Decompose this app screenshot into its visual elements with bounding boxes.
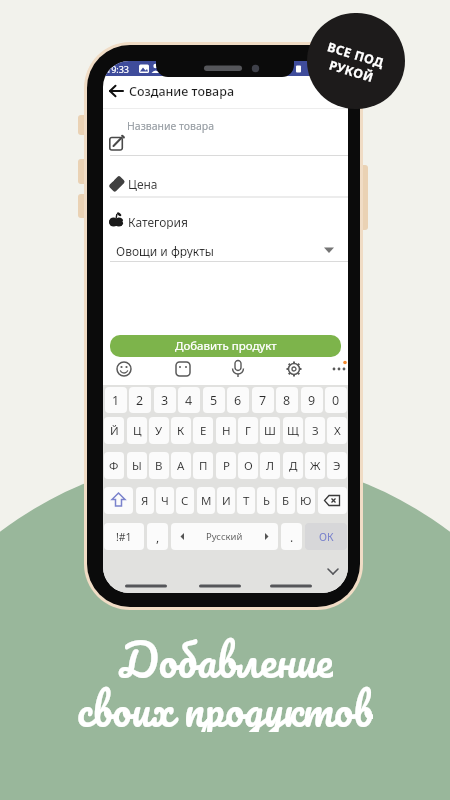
staticText: 3	[161, 392, 169, 409]
staticText: А	[177, 458, 185, 474]
staticText: ОК	[319, 530, 334, 544]
staticText: Русский	[206, 530, 243, 543]
button[interactable]: 7	[252, 387, 274, 413]
staticText: С	[181, 493, 189, 509]
button[interactable]: Э	[327, 452, 347, 479]
staticText: Ж	[310, 458, 321, 474]
button[interactable]: О	[238, 452, 258, 479]
button[interactable]: Ж	[305, 452, 325, 479]
button[interactable]: Я	[136, 487, 154, 514]
button[interactable]	[109, 85, 125, 97]
staticText: Л	[266, 458, 275, 474]
button[interactable]: 3	[154, 387, 176, 413]
staticText: 4	[185, 392, 193, 409]
staticText: Ю	[300, 493, 312, 509]
button[interactable]: 5	[203, 387, 225, 413]
staticText: Ч	[161, 493, 169, 509]
button[interactable]: Л	[260, 452, 280, 479]
staticText: Б	[282, 493, 290, 509]
button[interactable]: Р	[216, 452, 236, 479]
button[interactable]: Б	[277, 487, 295, 514]
button[interactable]: Т	[237, 487, 255, 514]
staticText: Т	[243, 493, 250, 509]
staticText: 7	[259, 392, 267, 409]
staticText: 1	[112, 392, 120, 409]
staticText: П	[199, 458, 208, 474]
button[interactable]: ,	[147, 523, 168, 550]
button[interactable]: М	[197, 487, 215, 514]
staticText: 19:33	[106, 63, 130, 75]
button[interactable]: Ь	[257, 487, 275, 514]
button[interactable]: П	[193, 452, 213, 479]
button[interactable]: Ц	[127, 417, 147, 444]
staticText: Создание товара	[129, 83, 235, 99]
button[interactable]: Д	[283, 452, 303, 479]
staticText: М	[201, 493, 212, 509]
staticText: Ш	[264, 423, 276, 439]
staticText: Х	[334, 423, 341, 439]
staticText: З	[312, 423, 319, 439]
staticText: 6	[234, 392, 242, 409]
button[interactable]: Й	[104, 417, 124, 444]
staticText: Е	[200, 423, 207, 439]
button[interactable]: Н	[216, 417, 236, 444]
button[interactable]: 1	[105, 387, 127, 413]
button[interactable]: В	[149, 452, 169, 479]
staticText: Добавить продукт	[175, 338, 277, 354]
staticText: Ь	[263, 493, 270, 509]
staticText: !#1	[116, 530, 132, 544]
staticText: 9	[308, 392, 316, 409]
staticText: Й	[110, 423, 119, 439]
staticText: .	[290, 529, 294, 545]
staticText: 2	[136, 392, 144, 409]
button[interactable]: !#1	[104, 523, 144, 550]
button[interactable]: 0	[325, 387, 347, 413]
button[interactable]: Добавить продукт	[110, 335, 341, 357]
button[interactable]: И	[217, 487, 235, 514]
button[interactable]	[104, 487, 133, 514]
button[interactable]: Русский	[171, 523, 278, 550]
staticText: К	[177, 423, 185, 439]
button[interactable]: Х	[327, 417, 347, 444]
button[interactable]	[318, 487, 347, 514]
staticText: своих продуктов	[77, 672, 373, 732]
staticText: Н	[222, 423, 231, 439]
staticText: Д	[289, 458, 298, 474]
button[interactable]: Ш	[260, 417, 280, 444]
staticText: Ф	[109, 458, 119, 474]
staticText: Ц	[133, 423, 142, 439]
staticText: У	[155, 423, 163, 439]
button[interactable]: 4	[178, 387, 200, 413]
button[interactable]: Е	[193, 417, 213, 444]
button[interactable]: Щ	[283, 417, 303, 444]
button[interactable]: Ю	[297, 487, 315, 514]
button[interactable]: ОК	[305, 523, 347, 550]
button[interactable]: З	[305, 417, 325, 444]
button[interactable]: Ы	[127, 452, 147, 479]
staticText: Р	[223, 458, 230, 474]
button[interactable]: Г	[238, 417, 258, 444]
button[interactable]: .	[281, 523, 302, 550]
staticText: Ы	[132, 458, 142, 474]
staticText: РУКОЙ	[327, 57, 376, 86]
button[interactable]: К	[171, 417, 191, 444]
staticText: В	[155, 458, 163, 474]
staticText: Название товара	[127, 119, 215, 133]
staticText: 0	[332, 392, 340, 409]
button[interactable]: 2	[129, 387, 151, 413]
button[interactable]: 8	[276, 387, 298, 413]
staticText: ,	[156, 529, 160, 545]
button[interactable]: А	[171, 452, 191, 479]
staticText: 5	[210, 392, 218, 409]
button[interactable]: 6	[227, 387, 249, 413]
button[interactable]: Ф	[104, 452, 124, 479]
button[interactable]: Ч	[156, 487, 174, 514]
button[interactable]: У	[149, 417, 169, 444]
button[interactable]: 9	[301, 387, 323, 413]
staticText: Я	[141, 493, 149, 509]
staticText: Овощи и фрукты	[116, 243, 214, 258]
button[interactable]: С	[176, 487, 194, 514]
button[interactable]	[307, 13, 405, 109]
staticText: 8	[283, 392, 291, 409]
staticText: Цена	[128, 176, 158, 191]
